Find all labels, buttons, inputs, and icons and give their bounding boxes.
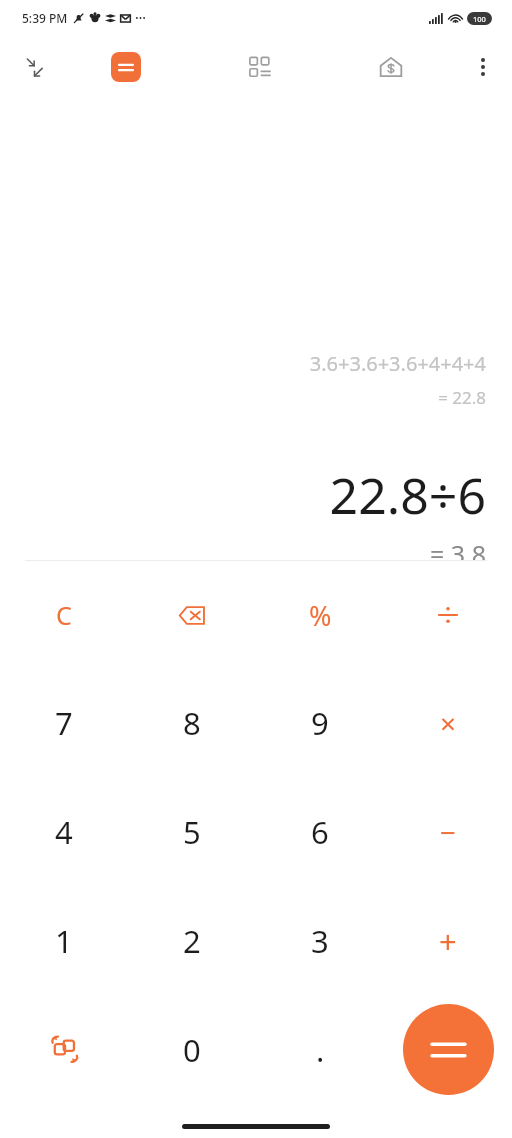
button[interactable]: Backspace	[128, 561, 256, 669]
button[interactable]: More options	[462, 46, 504, 88]
staticText: 9	[311, 702, 329, 744]
button[interactable]: Unit converter	[238, 45, 282, 89]
staticText: 6	[311, 811, 329, 853]
button[interactable]: Calculator	[103, 44, 149, 90]
button[interactable]: 1	[0, 886, 128, 995]
button[interactable]: 8	[128, 669, 256, 777]
button[interactable]: .	[256, 995, 384, 1104]
staticText: 0	[183, 1029, 201, 1071]
button[interactable]: 7	[0, 669, 128, 777]
button[interactable]: 4	[0, 777, 128, 886]
button[interactable]: 6	[256, 777, 384, 886]
button[interactable]: Mortgage calculator	[369, 45, 413, 89]
button[interactable]: 5	[128, 777, 256, 886]
staticText: 5:39 PM	[22, 10, 68, 26]
button[interactable]: Unit convert	[0, 995, 128, 1104]
staticText: %	[309, 597, 332, 634]
staticText: 8	[183, 702, 201, 744]
staticText: 1	[55, 920, 73, 962]
button[interactable]: Divide	[384, 561, 512, 669]
staticText: 4	[55, 811, 73, 853]
button[interactable]: ×	[384, 669, 512, 777]
other: Divide	[384, 561, 512, 669]
staticText: 2	[183, 920, 201, 962]
staticText: 7	[55, 702, 73, 744]
staticText: 3	[311, 920, 329, 962]
button[interactable]: Clear	[0, 561, 128, 669]
other: Clear	[0, 561, 128, 669]
button[interactable]: Equals	[403, 1004, 494, 1095]
staticText: −	[440, 813, 457, 851]
staticText: = 22.8	[438, 386, 486, 409]
staticText: 100	[473, 14, 486, 24]
button[interactable]: Collapse	[14, 47, 54, 87]
other: Unit convert	[0, 995, 128, 1104]
staticText: ×	[440, 704, 457, 742]
button[interactable]: +	[384, 886, 512, 995]
staticText: C	[56, 598, 72, 632]
other: Percent	[256, 561, 384, 669]
button[interactable]: 3	[256, 886, 384, 995]
button[interactable]: Percent	[256, 561, 384, 669]
button[interactable]: 9	[256, 669, 384, 777]
staticText: = 3.8	[429, 537, 486, 560]
staticText: +	[439, 920, 457, 962]
button[interactable]: 0	[128, 995, 256, 1104]
other: Backspace	[128, 561, 256, 669]
staticText: .	[316, 1029, 325, 1071]
button[interactable]: 2	[128, 886, 256, 995]
button[interactable]: −	[384, 777, 512, 886]
staticText: 22.8÷6	[329, 461, 486, 529]
staticText: 5	[183, 811, 201, 853]
staticText: 3.6+3.6+3.6+4+4+4	[309, 350, 486, 377]
